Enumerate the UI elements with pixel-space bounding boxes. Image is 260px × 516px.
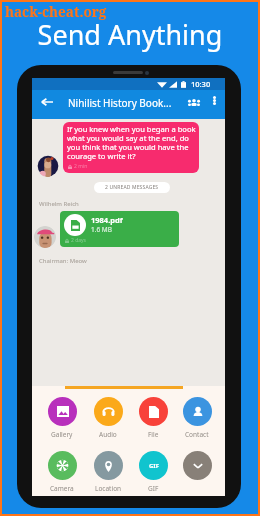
staticText: hack-cheat.org — [5, 3, 107, 21]
staticText: Gallery — [51, 430, 73, 439]
button[interactable]: More options — [206, 92, 222, 108]
staticText: 2 min — [74, 163, 88, 170]
staticText: Chairman: Meow — [39, 257, 87, 265]
staticText: Contact — [185, 430, 209, 439]
staticText: Camera — [50, 484, 74, 493]
staticText: Wilhelm Reich — [39, 200, 79, 208]
button[interactable]: Back — [37, 92, 57, 112]
button[interactable]: 1984.pdf — [60, 211, 179, 247]
staticText: 1984.pdf — [91, 215, 123, 225]
button[interactable]: Group members — [184, 92, 204, 112]
staticText: GIF — [148, 484, 159, 493]
button[interactable]: If you knew when you began a book what y… — [63, 122, 199, 173]
staticText: 2 UNREAD MESSAGES — [105, 184, 159, 191]
button[interactable]: Gallery — [41, 397, 83, 439]
staticText: Nihilist History Book... — [68, 96, 172, 110]
staticText: Audio — [99, 430, 117, 439]
button[interactable]: Camera — [41, 451, 83, 493]
staticText: 10:30 — [191, 79, 211, 89]
button[interactable]: File — [132, 397, 174, 439]
button[interactable]: Contact — [176, 397, 218, 439]
button[interactable]: Location — [87, 451, 129, 493]
staticText: Location — [95, 484, 122, 493]
staticText: 1.6 MB — [91, 225, 112, 234]
button[interactable]: 2 UNREAD MESSAGES — [94, 182, 170, 193]
staticText: 2 days — [71, 237, 86, 244]
button[interactable]: Audio — [87, 397, 129, 439]
button[interactable]: Collapse — [176, 451, 218, 484]
staticText: File — [148, 430, 159, 439]
button[interactable]: GIF — [132, 451, 174, 493]
staticText: Send Anything — [0, 16, 260, 53]
staticText: GIF — [149, 462, 159, 470]
staticText: If you knew when you began a book what y… — [67, 124, 196, 162]
